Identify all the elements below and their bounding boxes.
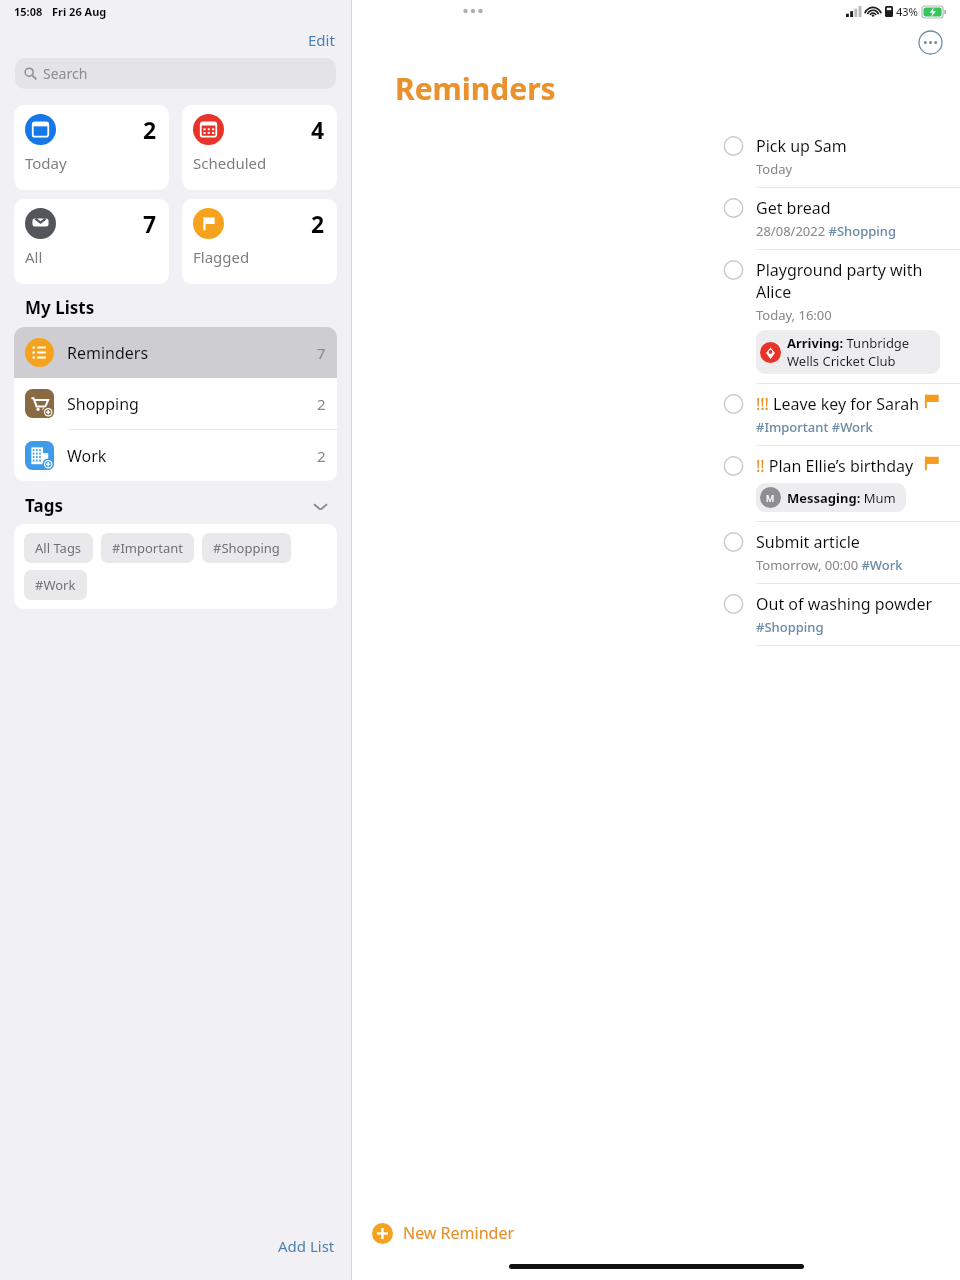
staticText: Shopping bbox=[67, 393, 139, 415]
staticText: #Work bbox=[35, 576, 76, 594]
button[interactable]: Collapse tags bbox=[309, 495, 331, 517]
staticText: Edit bbox=[308, 30, 335, 50]
staticText: Reminders bbox=[395, 68, 556, 109]
staticText: 28/08/2022 #Shopping bbox=[756, 222, 897, 240]
staticText: Get bread bbox=[756, 197, 831, 219]
staticText: #Shopping bbox=[756, 618, 824, 636]
button[interactable]: Work bbox=[14, 430, 337, 481]
button[interactable]: All Tags bbox=[24, 533, 93, 563]
staticText: Playground party with Alice bbox=[756, 259, 940, 303]
staticText: All Tags bbox=[35, 539, 82, 557]
staticText: Tomorrow, 00:00 #Work bbox=[756, 556, 903, 574]
staticText: 15:08 bbox=[14, 4, 43, 19]
staticText: M bbox=[766, 492, 775, 504]
staticText: Search bbox=[43, 64, 88, 83]
staticText: #Shopping bbox=[213, 539, 280, 557]
staticText: 43% bbox=[896, 4, 918, 19]
button[interactable]: Shopping bbox=[14, 378, 337, 429]
staticText: 7 bbox=[143, 208, 157, 239]
staticText: 4 bbox=[311, 114, 325, 145]
button[interactable]: Arriving: Tunbridge Wells Cricket Club bbox=[756, 330, 940, 374]
staticText: Out of washing powder bbox=[756, 593, 933, 615]
button[interactable]: !! Plan Ellie’s birthday bbox=[352, 446, 960, 521]
staticText: Today bbox=[756, 160, 793, 178]
staticText: 7 bbox=[317, 343, 326, 363]
staticText: Flagged bbox=[193, 247, 250, 267]
button[interactable]: !!! Leave key for Sarah bbox=[352, 384, 960, 445]
button[interactable]: 4 bbox=[182, 105, 337, 190]
staticText: My Lists bbox=[25, 296, 95, 319]
button[interactable]: M bbox=[756, 483, 906, 512]
staticText: Add List bbox=[278, 1236, 335, 1256]
staticText: Work bbox=[67, 445, 107, 467]
staticText: 2 bbox=[311, 208, 325, 239]
button[interactable]: Submit article bbox=[352, 522, 960, 583]
button[interactable]: Search bbox=[15, 58, 336, 89]
staticText: #Important bbox=[112, 539, 183, 557]
staticText: Arriving: Tunbridge Wells Cricket Club bbox=[787, 334, 930, 370]
staticText: !! Plan Ellie’s birthday bbox=[756, 455, 914, 477]
staticText: Today, 16:00 bbox=[756, 306, 832, 324]
staticText: 2 bbox=[143, 114, 157, 145]
button[interactable]: Pick up Sam bbox=[352, 126, 960, 187]
button[interactable]: Get bread bbox=[352, 188, 960, 249]
button[interactable]: 7 bbox=[14, 199, 169, 284]
staticText: Pick up Sam bbox=[756, 135, 847, 157]
button[interactable]: More options bbox=[918, 30, 943, 55]
staticText: Submit article bbox=[756, 531, 860, 553]
staticText: #Important #Work bbox=[756, 418, 873, 436]
button[interactable]: New Reminder bbox=[352, 1202, 960, 1264]
button[interactable]: 2 bbox=[14, 105, 169, 190]
button[interactable]: Reminders bbox=[14, 327, 337, 378]
staticText: Scheduled bbox=[193, 153, 267, 173]
button[interactable]: Playground party with Alice bbox=[352, 250, 960, 383]
staticText: Fri 26 Aug bbox=[52, 4, 107, 19]
staticText: Reminders bbox=[67, 342, 149, 364]
staticText: 2 bbox=[317, 446, 326, 466]
button[interactable]: 2 bbox=[182, 199, 337, 284]
button[interactable]: #Shopping bbox=[202, 533, 291, 563]
button[interactable]: #Work bbox=[24, 570, 87, 600]
staticText: Messaging: Mum bbox=[787, 489, 896, 507]
button[interactable]: Edit bbox=[304, 26, 339, 54]
staticText: Tags bbox=[25, 494, 63, 517]
staticText: New Reminder bbox=[403, 1222, 515, 1244]
button[interactable]: Out of washing powder bbox=[352, 584, 960, 645]
staticText: 2 bbox=[317, 394, 326, 414]
staticText: !!! Leave key for Sarah bbox=[756, 393, 920, 415]
staticText: Today bbox=[25, 153, 67, 173]
button[interactable]: Add List bbox=[274, 1232, 339, 1260]
button[interactable]: #Important bbox=[101, 533, 194, 563]
staticText: All bbox=[25, 247, 43, 267]
